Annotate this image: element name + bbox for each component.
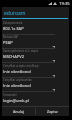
staticText: 802.1x EAP	[3, 26, 24, 31]
staticText: login@umk.pl	[3, 98, 29, 103]
staticText: Zapisz	[47, 109, 58, 114]
button[interactable]: Uwierzytelnianie w 2. etapie	[2, 49, 69, 63]
button[interactable]: Metoda EAP	[2, 35, 69, 49]
staticText: Anuluj	[13, 109, 24, 114]
staticText: Metoda EAP	[3, 35, 19, 39]
button[interactable]: Zabezpieczenia	[2, 21, 69, 35]
staticText: Zabezpieczenia	[3, 21, 23, 25]
staticText: eduroam	[4, 10, 26, 17]
button[interactable]: Certyfikat urzędu certyfikacji	[2, 64, 69, 78]
button[interactable]: Certyfikat użytkownika	[2, 78, 69, 92]
staticText: (nie określono)	[3, 83, 31, 88]
staticText: (nie określono)	[3, 69, 31, 74]
button[interactable]: Zapisz	[36, 107, 69, 116]
staticText: MSCHAPV2	[3, 54, 24, 59]
button[interactable]: Tożsamość	[2, 93, 69, 107]
staticText: Uwierzytelnianie w 2. etapie	[3, 49, 39, 53]
button[interactable]: Anuluj	[2, 107, 35, 116]
staticText: Certyfikat urzędu certyfikacji	[3, 64, 39, 68]
staticText: Tożsamość	[3, 93, 17, 97]
staticText: PEAP	[3, 40, 13, 45]
staticText: 19:35	[59, 1, 70, 7]
staticText: Certyfikat użytkownika	[3, 78, 32, 82]
